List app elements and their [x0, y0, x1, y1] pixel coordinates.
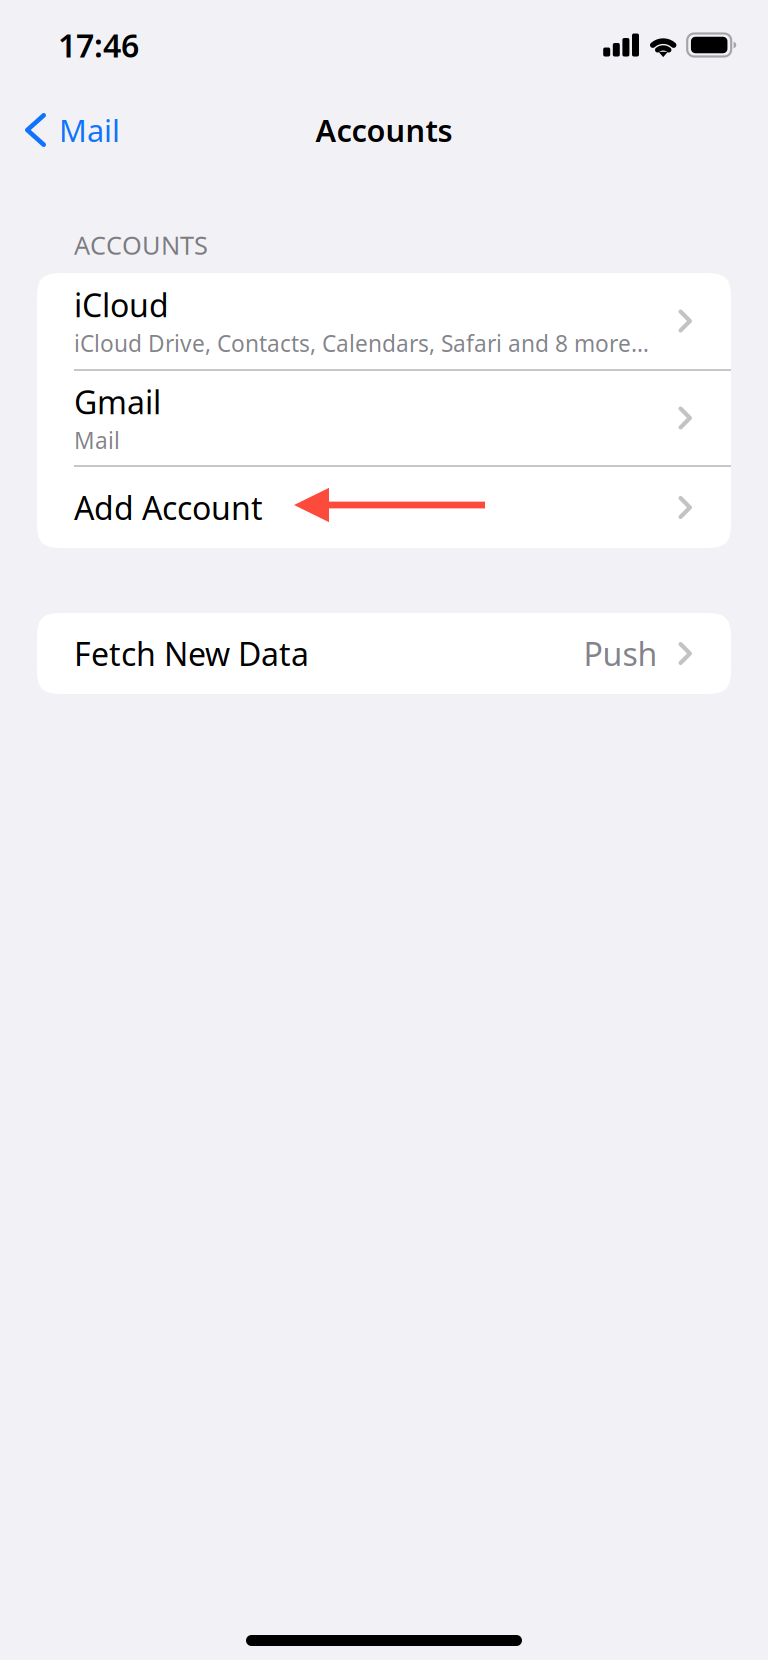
staticText: Accounts	[315, 110, 452, 150]
button[interactable]: Mail	[0, 100, 136, 160]
staticText: iCloud Drive, Contacts, Calendars, Safar…	[74, 328, 649, 358]
staticText: Gmail	[74, 381, 161, 423]
staticText: iCloud	[74, 284, 169, 326]
button[interactable]: Gmail	[37, 371, 731, 465]
staticText: 17:46	[58, 24, 139, 66]
staticText: Mail	[59, 110, 120, 150]
staticText: ACCOUNTS	[74, 228, 208, 262]
staticText: Fetch New Data	[74, 632, 309, 675]
staticText: Add Account	[74, 486, 263, 529]
button[interactable]: iCloud	[37, 273, 731, 369]
staticText: Push	[583, 632, 657, 675]
staticText: Mail	[74, 425, 120, 455]
button[interactable]: Add Account	[37, 467, 731, 548]
button[interactable]: Fetch New Data	[37, 613, 731, 694]
